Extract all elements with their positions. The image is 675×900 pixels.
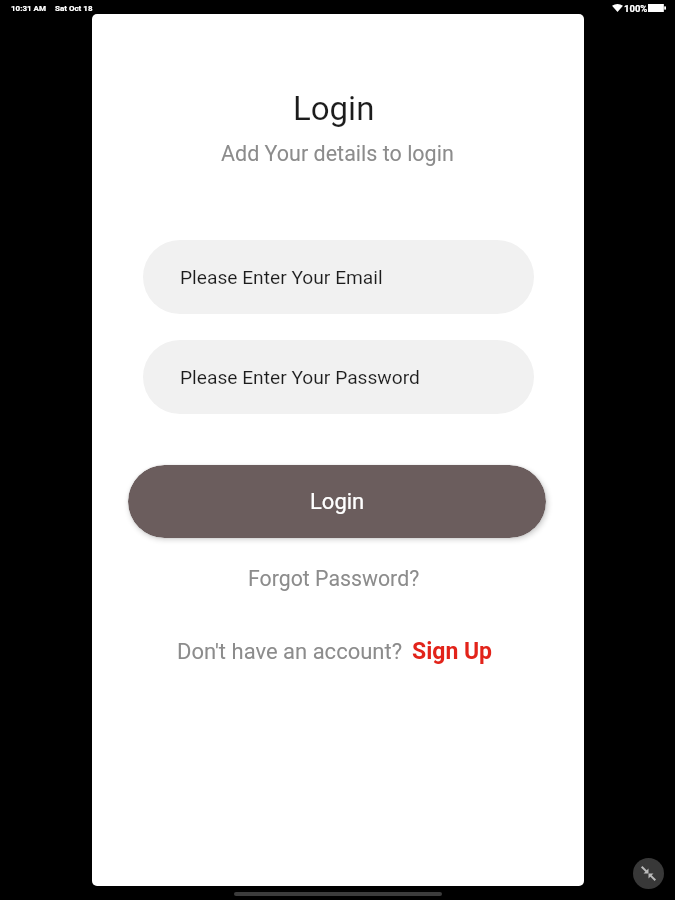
- staticText: Please Enter Your Email: [180, 266, 383, 289]
- staticText: Sat Oct 18: [55, 4, 93, 13]
- staticText: 10:31 AM: [11, 4, 47, 13]
- staticText: Please Enter Your Password: [180, 366, 420, 389]
- button[interactable]: Exit fullscreen: [633, 858, 664, 889]
- staticText: Add Your details to login: [221, 141, 454, 166]
- staticText: Forgot Password?: [248, 566, 420, 591]
- button[interactable]: Forgot Password?: [242, 562, 426, 595]
- button[interactable]: Please Enter Your Email: [143, 240, 534, 314]
- button[interactable]: Login: [128, 465, 546, 538]
- staticText: Login: [293, 89, 375, 128]
- staticText: 100%: [624, 3, 648, 14]
- staticText: Don't have an account?: [177, 639, 403, 665]
- staticText: Sign Up: [412, 638, 493, 665]
- staticText: Login: [310, 489, 365, 515]
- button[interactable]: Please Enter Your Password: [143, 340, 534, 414]
- button[interactable]: Sign Up: [410, 635, 495, 668]
